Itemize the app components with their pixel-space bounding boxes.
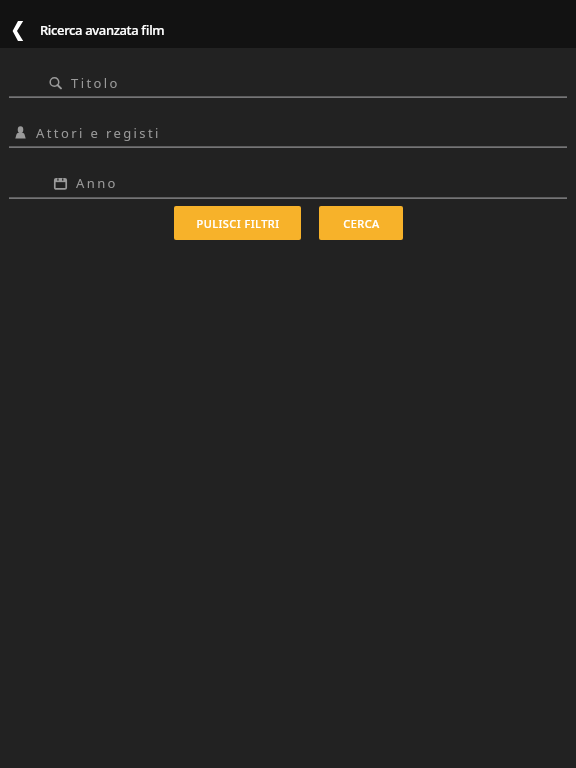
- button[interactable]: Anno: [0, 168, 576, 200]
- button[interactable]: CERCA: [319, 206, 403, 240]
- staticText: Attori e registi: [36, 124, 161, 142]
- button[interactable]: Titolo: [0, 68, 576, 100]
- staticText: Anno: [76, 174, 118, 192]
- staticText: PULISCI FILTRI: [196, 216, 280, 231]
- button[interactable]: Attori e registi: [0, 118, 576, 150]
- staticText: Titolo: [71, 74, 120, 92]
- button[interactable]: PULISCI FILTRI: [174, 206, 301, 240]
- button[interactable]: Back: [0, 12, 36, 48]
- staticText: Ricerca avanzata film: [40, 21, 165, 39]
- staticText: CERCA: [343, 216, 380, 231]
